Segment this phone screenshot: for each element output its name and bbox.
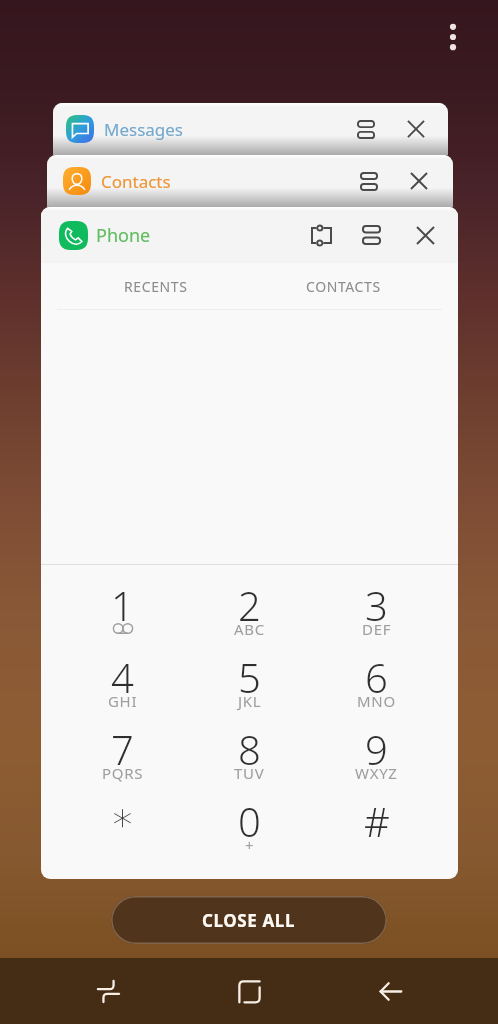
staticText: GHI <box>108 691 138 711</box>
staticText: + <box>245 835 255 855</box>
staticText: CONTACTS <box>306 277 381 296</box>
button[interactable]: Pop-up view <box>299 207 343 263</box>
staticText: DEF <box>362 619 392 639</box>
button[interactable]: 6 <box>313 650 440 722</box>
button[interactable]: 2 <box>186 578 313 650</box>
staticText: 1 <box>111 578 134 632</box>
staticText: 2 <box>238 578 261 632</box>
button[interactable]: Contacts <box>47 155 453 207</box>
staticText: 7 <box>111 722 134 776</box>
staticText: Phone <box>96 223 151 248</box>
staticText: 6 <box>365 650 388 704</box>
button[interactable]: ∗ <box>59 794 186 866</box>
staticText: CLOSE ALL <box>202 909 296 932</box>
staticText: Messages <box>104 118 184 141</box>
button[interactable]: Close <box>397 155 441 207</box>
staticText: 0 <box>238 794 261 848</box>
button[interactable]: More options <box>430 14 476 60</box>
button[interactable]: # <box>313 794 440 866</box>
button[interactable]: Split screen <box>347 155 391 207</box>
staticText: MNO <box>357 691 396 711</box>
button[interactable]: 4 <box>59 650 186 722</box>
button[interactable]: Back <box>357 958 423 1024</box>
button[interactable]: 0 <box>186 794 313 866</box>
button[interactable]: 7 <box>59 722 186 794</box>
staticText: TUV <box>234 763 265 783</box>
button[interactable]: 3 <box>313 578 440 650</box>
button[interactable]: Split screen <box>344 103 388 155</box>
staticText: ABC <box>234 619 265 639</box>
button[interactable]: Close <box>394 103 438 155</box>
button[interactable]: 1 <box>59 578 186 650</box>
button[interactable]: CONTACTS <box>249 263 437 309</box>
button[interactable]: Split screen <box>349 207 393 263</box>
staticText: 5 <box>238 650 261 704</box>
button[interactable]: Messages <box>53 103 448 155</box>
button[interactable]: 8 <box>186 722 313 794</box>
staticText: 9 <box>365 722 388 776</box>
staticText: WXYZ <box>355 763 398 783</box>
button[interactable]: Phone <box>41 207 458 263</box>
staticText: # <box>364 794 390 848</box>
button[interactable]: Recents <box>75 958 141 1024</box>
staticText: 4 <box>111 650 134 704</box>
staticText: 8 <box>238 722 261 776</box>
button[interactable]: 9 <box>313 722 440 794</box>
staticText: 3 <box>365 578 388 632</box>
button[interactable]: 5 <box>186 650 313 722</box>
staticText: JKL <box>238 691 262 711</box>
button[interactable]: CLOSE ALL <box>111 896 387 944</box>
staticText: PQRS <box>102 763 144 783</box>
staticText: Contacts <box>101 170 171 193</box>
staticText: ∗ <box>110 794 136 841</box>
staticText: RECENTS <box>124 277 188 296</box>
button[interactable]: Home <box>216 958 282 1024</box>
button[interactable]: Close <box>403 207 447 263</box>
button[interactable]: RECENTS <box>62 263 249 309</box>
